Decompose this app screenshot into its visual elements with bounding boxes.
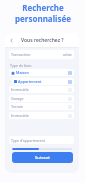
staticText: Maison xyxy=(16,70,29,75)
staticText: achat xyxy=(63,52,72,57)
button[interactable]: Maison xyxy=(9,69,74,76)
staticText: Garage xyxy=(11,96,24,101)
button[interactable]: Immeuble xyxy=(9,86,74,93)
staticText: Appartement xyxy=(18,79,42,84)
staticText: Type de bien xyxy=(10,63,32,68)
staticText: Immeuble xyxy=(11,113,29,118)
staticText: personnalisée xyxy=(15,13,71,24)
staticText: Immeuble xyxy=(11,87,29,92)
staticText: Recherche xyxy=(22,2,64,13)
button[interactable]: Transaction xyxy=(9,50,74,59)
staticText: Transaction xyxy=(11,52,31,57)
staticText: Type d'appartement xyxy=(11,138,45,143)
button[interactable]: Appartement xyxy=(12,78,74,85)
button[interactable]: Immeuble xyxy=(9,112,74,119)
button[interactable]: Terrain xyxy=(9,103,74,110)
staticText: Vous recherchez ? xyxy=(21,37,64,44)
button[interactable]: Garage xyxy=(9,95,74,102)
button[interactable]: Type d'appartement xyxy=(9,136,74,144)
button[interactable]: Suivant xyxy=(12,152,73,163)
button[interactable]: Back xyxy=(8,37,15,44)
staticText: Terrain xyxy=(11,104,24,109)
staticText: Suivant xyxy=(35,155,50,161)
